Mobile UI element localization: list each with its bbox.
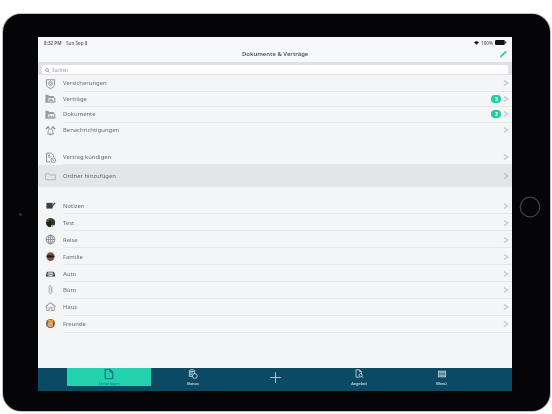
button[interactable]: Benachrichtigungen bbox=[38, 122, 512, 138]
button[interactable]: Bearbeiten bbox=[499, 50, 507, 58]
staticText: Benachrichtigungen bbox=[63, 126, 120, 134]
button[interactable]: Notizen bbox=[38, 197, 512, 214]
button[interactable]: Auto bbox=[38, 265, 512, 282]
button[interactable]: Familie bbox=[38, 248, 512, 265]
staticText: 3 bbox=[495, 96, 498, 103]
staticText: Freunde bbox=[63, 320, 86, 328]
button[interactable]: Hinzufügen bbox=[234, 368, 317, 386]
staticText: Ordner hinzufügen bbox=[63, 172, 116, 180]
button[interactable]: Reise bbox=[38, 231, 512, 248]
staticText: Büro bbox=[63, 286, 77, 294]
button[interactable]: Suchen bbox=[42, 65, 508, 74]
button[interactable]: Angebot bbox=[317, 368, 400, 386]
staticText: Auto bbox=[63, 270, 77, 278]
staticText: 2 bbox=[495, 111, 498, 118]
staticText: Verträge bbox=[63, 95, 87, 103]
staticText: Bonus bbox=[187, 381, 199, 386]
button[interactable]: Bonus bbox=[151, 368, 234, 386]
staticText: Familie bbox=[63, 253, 83, 261]
button[interactable]: Ordner hinzufügen bbox=[38, 165, 512, 187]
staticText: 8:32 PM bbox=[44, 40, 62, 46]
button[interactable]: Versicherungen bbox=[38, 75, 512, 91]
button[interactable]: Freunde bbox=[38, 315, 512, 332]
button[interactable]: Büro bbox=[38, 281, 512, 298]
button[interactable]: Verträge bbox=[38, 91, 512, 106]
staticText: Vertrag kündigen bbox=[63, 153, 112, 161]
staticText: Angebot bbox=[351, 381, 367, 386]
staticText: Dokumente & Verträge bbox=[242, 50, 309, 58]
staticText: 100% bbox=[481, 40, 493, 46]
staticText: Test bbox=[63, 219, 75, 227]
button[interactable]: Test bbox=[38, 214, 512, 231]
staticText: Reise bbox=[63, 236, 78, 244]
button[interactable]: Dokumente bbox=[38, 106, 512, 122]
button[interactable]: Menü bbox=[400, 368, 483, 386]
staticText: Sun Sep 8 bbox=[66, 40, 88, 46]
button[interactable]: Unterlagen bbox=[67, 368, 151, 386]
staticText: Dokumente bbox=[63, 110, 96, 118]
staticText: Haus bbox=[63, 303, 78, 311]
staticText: Unterlagen bbox=[99, 381, 120, 386]
staticText: Notizen bbox=[63, 202, 85, 210]
button[interactable]: Vertrag kündigen bbox=[38, 149, 512, 165]
button[interactable]: Haus bbox=[38, 298, 512, 315]
staticText: Menü bbox=[436, 381, 447, 386]
staticText: Versicherungen bbox=[63, 79, 107, 87]
staticText: Suchen bbox=[52, 67, 68, 73]
